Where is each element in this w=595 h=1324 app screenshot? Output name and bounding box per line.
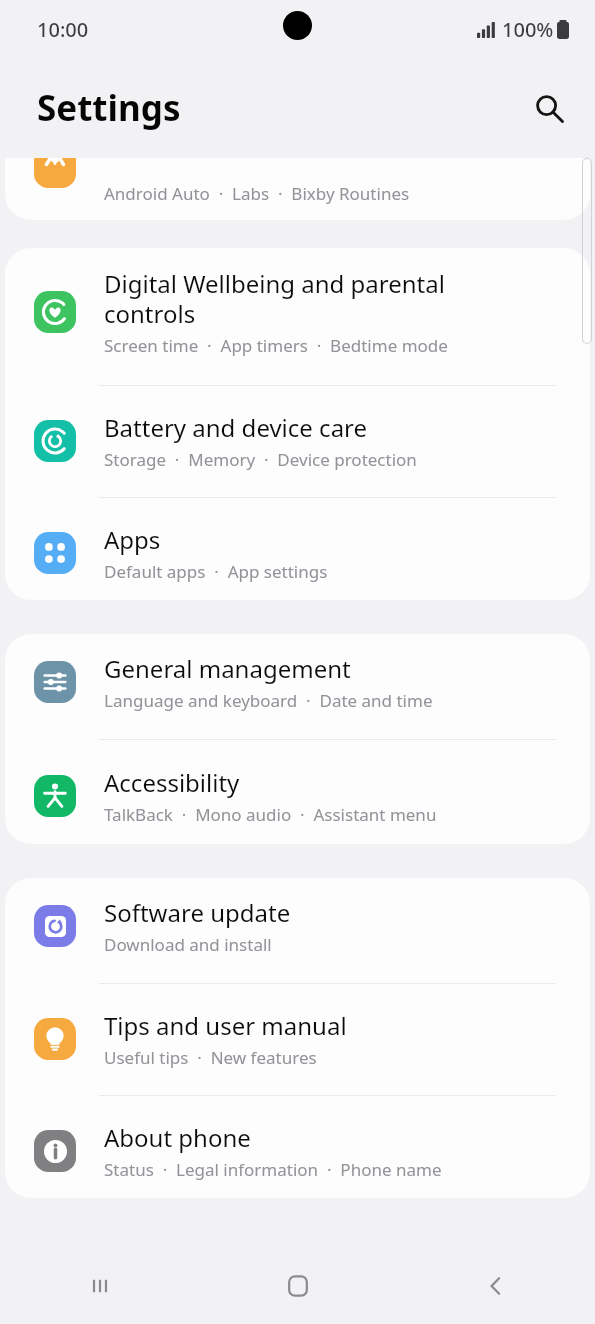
staticText: Language and keyboard · Date and time <box>104 689 433 712</box>
button[interactable]: Recent apps <box>0 1248 199 1324</box>
button[interactable]: Tips and user manual <box>5 992 590 1086</box>
staticText: Apps <box>104 523 161 556</box>
staticText: Status · Legal information · Phone name <box>104 1158 442 1181</box>
staticText: Software update <box>104 896 291 929</box>
button[interactable]: About phone <box>5 1104 590 1198</box>
button[interactable]: Search <box>525 84 573 132</box>
button[interactable]: Digital Wellbeing and parental controls <box>5 248 590 376</box>
staticText: TalkBack · Mono audio · Assistant menu <box>104 803 437 826</box>
staticText: Useful tips · New features <box>104 1046 317 1069</box>
button[interactable]: Back <box>397 1248 595 1324</box>
staticText: Android Auto · Labs · Bixby Routines <box>104 182 410 205</box>
staticText: Tips and user manual <box>104 1009 347 1042</box>
staticText: Default apps · App settings <box>104 560 328 583</box>
staticText: Download and install <box>104 933 272 956</box>
button[interactable]: Android Auto · Labs · Bixby Routines <box>5 158 590 220</box>
button[interactable]: Apps <box>5 506 590 600</box>
button[interactable]: General management <box>5 634 590 730</box>
staticText: Battery and device care <box>104 411 368 444</box>
staticText: Storage · Memory · Device protection <box>104 448 417 471</box>
button[interactable]: Home <box>199 1248 397 1324</box>
staticText: Accessibility <box>104 766 240 799</box>
staticText: Screen time · App timers · Bedtime mode <box>104 334 448 357</box>
staticText: Digital Wellbeing and parental controls <box>104 267 504 330</box>
staticText: General management <box>104 652 351 685</box>
button[interactable]: Accessibility <box>5 748 590 844</box>
button[interactable]: Battery and device care <box>5 394 590 488</box>
staticText: 10:00 <box>37 16 89 43</box>
staticText: 100% <box>502 16 554 43</box>
staticText: Settings <box>37 84 181 132</box>
button[interactable]: Software update <box>5 878 590 974</box>
staticText: About phone <box>104 1121 251 1154</box>
